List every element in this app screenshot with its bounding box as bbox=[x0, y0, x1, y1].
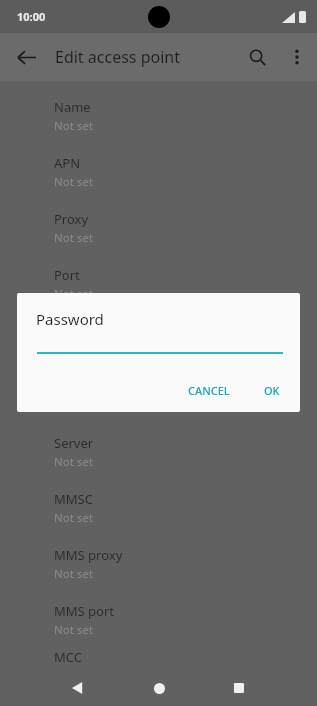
staticText: APN bbox=[54, 154, 81, 172]
staticText: MMS proxy bbox=[54, 546, 123, 564]
button[interactable]: Home bbox=[141, 670, 177, 706]
staticText: Not set bbox=[54, 510, 93, 526]
staticText: Not set bbox=[54, 622, 93, 638]
staticText: Not set bbox=[54, 454, 93, 470]
staticText: Not set bbox=[54, 398, 93, 414]
staticText: Not set bbox=[54, 174, 93, 190]
staticText: 10:00 bbox=[17, 9, 46, 24]
staticText: Not set bbox=[54, 342, 93, 358]
staticText: Name bbox=[54, 98, 91, 116]
staticText: CANCEL bbox=[188, 383, 230, 398]
button[interactable]: Back bbox=[6, 37, 46, 77]
button[interactable]: MCC bbox=[0, 648, 317, 670]
staticText: Edit access point bbox=[55, 46, 180, 68]
staticText: MMS port bbox=[54, 602, 115, 620]
button[interactable]: CANCEL bbox=[180, 377, 238, 404]
button[interactable]: More options bbox=[277, 37, 317, 77]
button[interactable]: Search bbox=[237, 37, 277, 77]
staticText: Not set bbox=[54, 230, 93, 246]
button[interactable]: MMS proxy bbox=[0, 536, 317, 592]
staticText: Not set bbox=[54, 566, 93, 582]
button[interactable]: Password bbox=[0, 368, 317, 424]
button[interactable]: MMS port bbox=[0, 592, 317, 648]
button[interactable]: Name bbox=[0, 88, 317, 144]
staticText: MMSC bbox=[54, 490, 93, 508]
staticText: OK bbox=[264, 383, 280, 398]
staticText: Not set bbox=[54, 118, 93, 134]
staticText: Password bbox=[36, 309, 104, 329]
button[interactable]: APN bbox=[0, 144, 317, 200]
button[interactable]: Back bbox=[60, 670, 96, 706]
staticText: Server bbox=[54, 434, 94, 452]
button[interactable]: OK bbox=[256, 377, 288, 404]
button[interactable]: Recent apps bbox=[221, 670, 257, 706]
button[interactable]: Username bbox=[0, 312, 317, 368]
button[interactable]: Port bbox=[0, 256, 317, 312]
staticText: Username bbox=[54, 322, 118, 340]
button[interactable]: MMSC bbox=[0, 480, 317, 536]
staticText: MCC bbox=[54, 648, 82, 666]
staticText: Not set bbox=[54, 286, 93, 302]
button[interactable]: Proxy bbox=[0, 200, 317, 256]
staticText: Port bbox=[54, 266, 80, 284]
staticText: Proxy bbox=[54, 210, 89, 228]
button[interactable]: Server bbox=[0, 424, 317, 480]
